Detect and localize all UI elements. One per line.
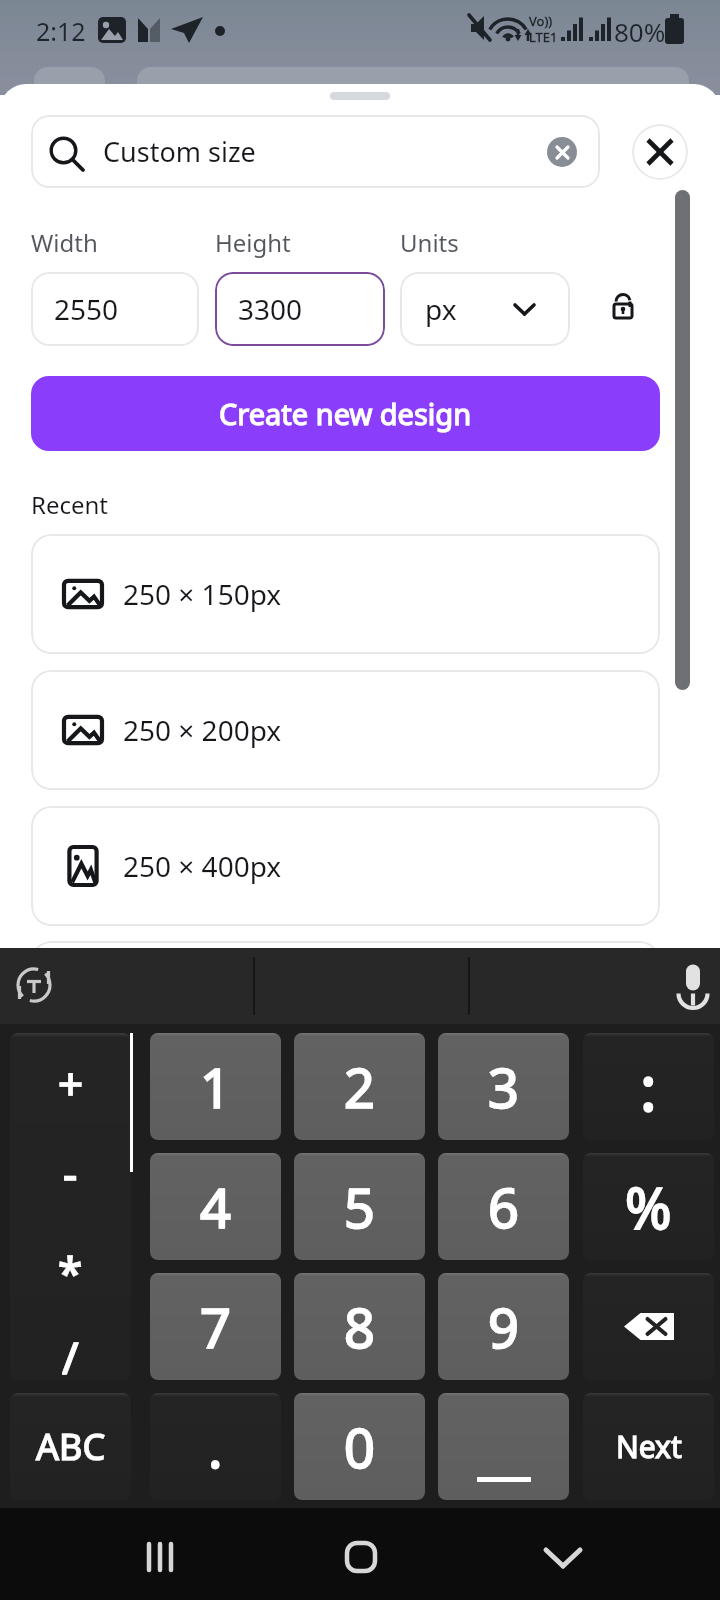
staticText: Height — [215, 226, 291, 259]
button[interactable]: : — [583, 1033, 714, 1140]
button[interactable]: Backspace — [583, 1273, 714, 1380]
button[interactable]: ABC — [10, 1393, 131, 1500]
staticText: Create new design — [219, 394, 472, 433]
staticText: + — [58, 1053, 84, 1105]
staticText: Vo)) — [529, 12, 553, 30]
button[interactable]: 2550 — [31, 272, 199, 346]
button[interactable]: Lock aspect ratio — [603, 286, 645, 328]
staticText: Recent — [31, 488, 109, 521]
staticText: . — [208, 1410, 223, 1484]
button[interactable]: Close — [632, 124, 688, 180]
staticText: 1 — [200, 1050, 231, 1124]
button[interactable]: 3300 — [215, 272, 385, 346]
staticText: Next — [616, 1426, 682, 1467]
button[interactable]: 0 — [294, 1393, 425, 1500]
button[interactable]: + — [10, 1033, 131, 1380]
staticText: ABC — [36, 1422, 106, 1471]
button[interactable]: Switch input language — [14, 965, 54, 1005]
button[interactable]: Voice input — [672, 958, 716, 1002]
staticText: 250 × 150px — [123, 575, 282, 613]
staticText: 6 — [488, 1170, 519, 1244]
staticText: 3 — [488, 1050, 519, 1124]
staticText: px — [425, 290, 457, 328]
staticText: 250 × 400px — [123, 847, 282, 885]
button[interactable]: Home — [321, 1527, 401, 1587]
button[interactable]: Recent apps — [120, 1527, 200, 1587]
staticText: % — [625, 1169, 672, 1245]
button[interactable]: 8 — [294, 1273, 425, 1380]
staticText: 7 — [200, 1290, 231, 1364]
button[interactable]: 1 — [150, 1033, 281, 1140]
staticText: 5 — [344, 1170, 375, 1244]
button[interactable]: 4 — [150, 1153, 281, 1260]
staticText: : — [640, 1045, 657, 1129]
staticText: 4 — [200, 1170, 231, 1244]
staticText: 2 — [344, 1050, 375, 1124]
button[interactable]: Custom size — [31, 115, 600, 188]
staticText: 9 — [488, 1290, 519, 1364]
staticText: Custom size — [103, 133, 256, 170]
staticText: - — [63, 1143, 78, 1195]
button[interactable]: Next — [583, 1393, 714, 1500]
button[interactable]: Space — [438, 1393, 569, 1500]
staticText: / — [62, 1327, 79, 1379]
button[interactable]: Create new design — [31, 376, 660, 451]
button[interactable]: 6 — [438, 1153, 569, 1260]
staticText: 0 — [344, 1410, 375, 1484]
staticText: 3300 — [238, 290, 303, 328]
staticText: 8 — [344, 1290, 375, 1364]
button[interactable]: 9 — [438, 1273, 569, 1380]
staticText: Units — [400, 226, 459, 259]
button[interactable] — [31, 941, 660, 948]
staticText: LTE1 — [529, 28, 558, 46]
button[interactable]: px — [400, 272, 570, 346]
button[interactable]: 7 — [150, 1273, 281, 1380]
staticText: Width — [31, 226, 98, 259]
staticText: 2:12 — [36, 14, 86, 48]
button[interactable]: 3 — [438, 1033, 569, 1140]
staticText: 80% — [614, 14, 666, 49]
button[interactable]: . — [150, 1393, 281, 1500]
button[interactable]: % — [583, 1153, 714, 1260]
button[interactable]: 2 — [294, 1033, 425, 1140]
button[interactable]: 250 × 150px — [31, 534, 660, 654]
button[interactable]: Hide keyboard — [523, 1528, 603, 1588]
staticText: * — [58, 1242, 83, 1294]
button[interactable]: Clear search — [547, 137, 577, 167]
staticText: 2550 — [54, 290, 119, 328]
staticText: 250 × 200px — [123, 711, 282, 749]
button[interactable]: 250 × 400px — [31, 806, 660, 926]
button[interactable]: 5 — [294, 1153, 425, 1260]
button[interactable]: 250 × 200px — [31, 670, 660, 790]
